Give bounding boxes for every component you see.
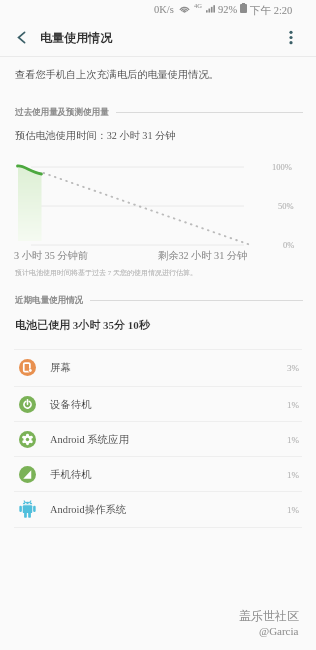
staticText: 1% (287, 470, 299, 480)
staticText: 剩余32 小时 31 分钟 (158, 249, 248, 262)
button[interactable]: Android操作系统 (0, 491, 316, 528)
button[interactable]: Back (9, 25, 33, 49)
staticText: 0K/s (154, 4, 174, 16)
staticText: 查看您手机自上次充满电后的电量使用情况。 (15, 68, 219, 81)
staticText: 手机待机 (50, 468, 92, 481)
staticText: 4G (194, 2, 202, 9)
staticText: 近期电量使用情况 (15, 295, 83, 306)
staticText: 1% (287, 505, 299, 515)
staticText: 92% (218, 4, 238, 16)
button[interactable]: 手机待机 (0, 456, 316, 493)
staticText: 盖乐世社区 (239, 608, 299, 623)
staticText: 设备待机 (50, 398, 92, 411)
staticText: 1% (287, 400, 299, 410)
staticText: 3% (287, 363, 299, 373)
button[interactable]: More options (279, 25, 303, 49)
staticText: 电池已使用 3小时 35分 10秒 (15, 318, 150, 332)
button[interactable]: 屏幕 (0, 349, 316, 386)
staticText: 100% (272, 162, 292, 171)
staticText: 电量使用情况 (40, 30, 112, 45)
staticText: 3 小时 35 分钟前 (14, 249, 88, 262)
staticText: 预计电池使用时间将基于过去 7 天您的使用情况进行估算。 (15, 268, 197, 277)
button[interactable]: Android 系统应用 (0, 421, 316, 458)
staticText: 屏幕 (50, 361, 71, 374)
staticText: 1% (287, 435, 299, 445)
staticText: Android操作系统 (50, 503, 127, 516)
staticText: 0% (283, 240, 295, 249)
staticText: 过去使用量及预测使用量 (15, 107, 109, 118)
staticText: 预估电池使用时间：32 小时 31 分钟 (15, 129, 176, 142)
staticText: 下午 2:20 (250, 4, 293, 17)
staticText: Android 系统应用 (50, 433, 129, 446)
staticText: @Garcia (259, 625, 299, 637)
staticText: 50% (278, 201, 294, 210)
button[interactable]: 设备待机 (0, 386, 316, 423)
